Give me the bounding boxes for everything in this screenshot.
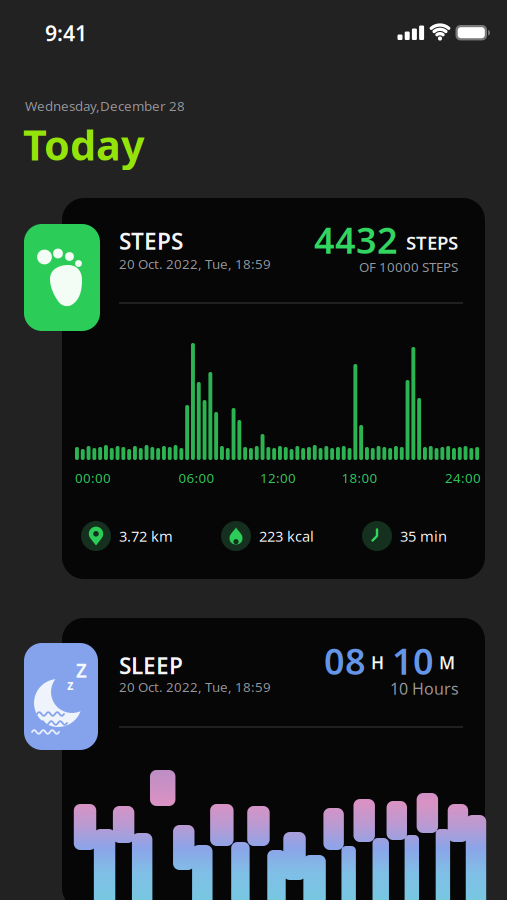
staticText: 06:00: [178, 469, 214, 487]
staticText: 08: [324, 637, 366, 685]
staticText: H: [371, 651, 384, 674]
button[interactable]: STEPS: [24, 198, 485, 579]
staticText: 10: [392, 637, 434, 685]
staticText: 3.72 km: [119, 526, 173, 546]
staticText: SLEEP: [119, 650, 183, 681]
staticText: Z: [76, 658, 87, 683]
staticText: 18:00: [341, 469, 377, 487]
staticText: Wednesday,December 28: [25, 97, 185, 115]
staticText: 00:00: [75, 469, 111, 487]
staticText: 10 Hours: [390, 678, 459, 699]
staticText: M: [439, 651, 455, 674]
staticText: Today: [23, 117, 145, 172]
staticText: 9:41: [45, 19, 87, 47]
staticText: 24:00: [445, 469, 481, 487]
staticText: 20 Oct. 2022, Tue, 18:59: [119, 678, 271, 696]
staticText: 4432: [314, 216, 398, 264]
staticText: 12:00: [260, 469, 296, 487]
staticText: 223 kcal: [259, 526, 314, 546]
staticText: OF 10000 STEPS: [359, 258, 458, 276]
button[interactable]: SLEEP: [24, 618, 485, 900]
staticText: STEPS: [119, 226, 183, 256]
staticText: STEPS: [406, 230, 458, 255]
staticText: z: [67, 676, 74, 694]
staticText: 20 Oct. 2022, Tue, 18:59: [119, 255, 271, 273]
staticText: 35 min: [400, 526, 447, 546]
